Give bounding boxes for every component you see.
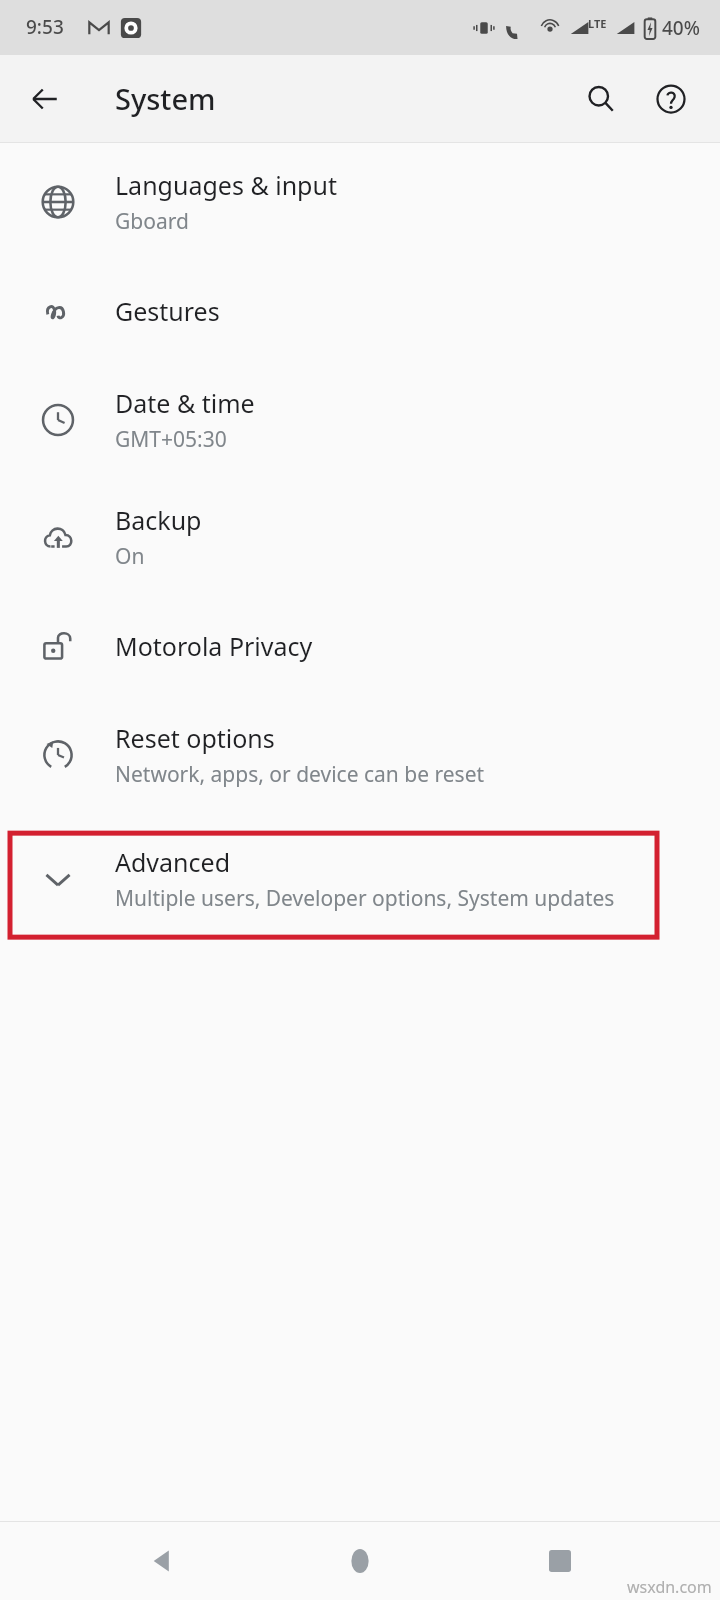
button[interactable]: Reset options	[0, 696, 720, 813]
staticText: Languages & input	[115, 168, 337, 202]
staticText: On	[115, 542, 145, 571]
staticText: 40%	[662, 15, 700, 41]
button[interactable]: Back	[18, 72, 72, 126]
staticText: GMT+05:30	[115, 425, 227, 454]
staticText: wsxdn.com	[627, 1576, 712, 1598]
button[interactable]: Gestures	[0, 260, 720, 361]
staticText: Reset options	[115, 721, 275, 755]
staticText: System	[115, 79, 216, 118]
button[interactable]: Search	[574, 72, 628, 126]
button[interactable]: Date & time	[0, 361, 720, 478]
button[interactable]: Back	[122, 1522, 200, 1600]
button[interactable]: Backup	[0, 478, 720, 595]
button[interactable]: Home	[321, 1522, 399, 1600]
staticText: Gestures	[115, 294, 220, 328]
staticText: Motorola Privacy	[115, 629, 313, 663]
staticText: Backup	[115, 503, 202, 537]
button[interactable]: Motorola Privacy	[0, 595, 720, 696]
staticText: Advanced	[115, 845, 231, 879]
staticText: Date & time	[115, 386, 255, 420]
staticText: Multiple users, Developer options, Syste…	[115, 884, 615, 913]
staticText: LTE	[588, 16, 607, 31]
button[interactable]: Recent apps	[521, 1522, 599, 1600]
button[interactable]: Languages & input	[0, 143, 720, 260]
button[interactable]: Advanced	[0, 820, 720, 937]
staticText: Gboard	[115, 207, 189, 236]
staticText: Network, apps, or device can be reset	[115, 760, 485, 789]
staticText: 9:53	[26, 14, 64, 40]
button[interactable]: Help	[644, 72, 698, 126]
